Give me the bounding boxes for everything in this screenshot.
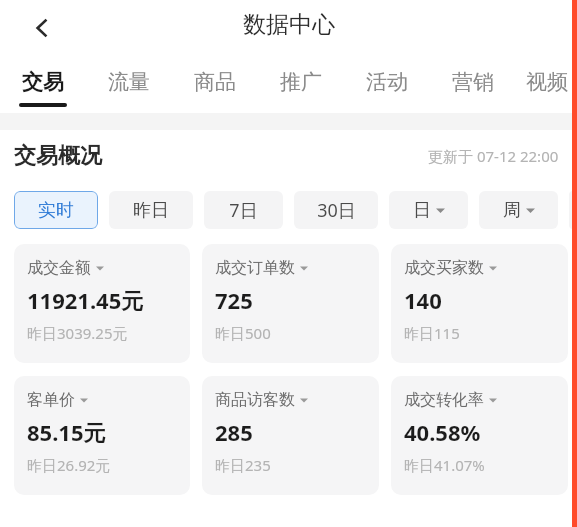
button[interactable]: 成交买家数	[391, 244, 568, 363]
staticText: 285	[215, 417, 253, 447]
button[interactable]: 交易	[0, 56, 86, 113]
staticText: 数据中心	[243, 10, 335, 39]
staticText: 视频	[526, 69, 568, 95]
button[interactable]: 流量	[86, 56, 172, 113]
button[interactable]: 推广	[258, 56, 344, 113]
button[interactable]: 客单价	[14, 376, 190, 495]
staticText: 11921.45元	[27, 285, 144, 315]
staticText: 昨日115	[404, 323, 460, 343]
button[interactable]: 日	[389, 191, 468, 229]
staticText: 30日	[317, 198, 356, 223]
staticText: 成交买家数	[404, 258, 484, 278]
staticText: 40.58%	[404, 417, 481, 447]
staticText: 昨日235	[215, 455, 271, 475]
button[interactable]: 商品访客数	[202, 376, 379, 495]
staticText: 交易	[22, 69, 64, 95]
button[interactable]: 实时	[14, 191, 98, 229]
staticText: 昨日26.92元	[27, 455, 111, 475]
staticText: 成交订单数	[215, 258, 295, 278]
staticText: 成交转化率	[404, 390, 484, 410]
button[interactable]: 昨日	[109, 191, 193, 229]
staticText: 商品	[194, 69, 236, 95]
staticText: 实时	[38, 199, 74, 222]
staticText: 昨日	[133, 199, 169, 222]
staticText: 昨日41.07%	[404, 455, 485, 475]
staticText: 推广	[280, 69, 322, 95]
button[interactable]: 周	[479, 191, 558, 229]
button[interactable]: More date ranges	[569, 191, 577, 229]
button[interactable]: 营销	[430, 56, 516, 113]
staticText: 营销	[452, 69, 494, 95]
staticText: 昨日3039.25元	[27, 323, 128, 343]
button[interactable]: 商品	[172, 56, 258, 113]
staticText: 更新于 07-12 22:00	[428, 146, 559, 166]
staticText: 周	[503, 199, 521, 222]
staticText: 昨日500	[215, 323, 271, 343]
button[interactable]: 30日	[294, 191, 378, 229]
staticText: 725	[215, 285, 253, 315]
staticText: 客单价	[27, 390, 75, 410]
button[interactable]: 7日	[204, 191, 283, 229]
staticText: 成交金额	[27, 258, 91, 278]
button[interactable]: 成交金额	[14, 244, 190, 363]
button[interactable]: Back	[20, 6, 64, 50]
staticText: 140	[404, 285, 442, 315]
button[interactable]: 视频	[516, 56, 577, 113]
staticText: 活动	[366, 69, 408, 95]
staticText: 日	[413, 199, 431, 222]
button[interactable]: 成交转化率	[391, 376, 568, 495]
staticText: 交易概况	[14, 142, 102, 170]
staticText: 流量	[108, 69, 150, 95]
staticText: 85.15元	[27, 417, 106, 447]
staticText: 7日	[229, 198, 258, 223]
staticText: 商品访客数	[215, 390, 295, 410]
button[interactable]: 成交订单数	[202, 244, 379, 363]
button[interactable]: 活动	[344, 56, 430, 113]
